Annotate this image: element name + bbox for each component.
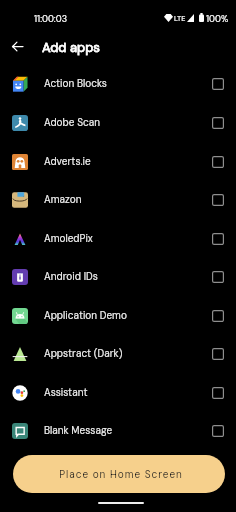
button[interactable]: Action Blocks bbox=[0, 64, 236, 103]
button[interactable]: Assistant bbox=[0, 373, 236, 412]
button[interactable]: Appstract (Dark) bbox=[0, 334, 236, 373]
staticText: LTE bbox=[174, 14, 186, 24]
staticText: Action Blocks bbox=[44, 77, 107, 90]
staticText: Blank Message bbox=[44, 424, 113, 437]
staticText: Application Demo bbox=[44, 309, 127, 322]
staticText: Appstract (Dark) bbox=[44, 347, 123, 360]
button[interactable]: Place on Home Screen bbox=[13, 455, 225, 493]
staticText: Add apps bbox=[42, 39, 100, 56]
button[interactable]: AmoledPix bbox=[0, 219, 236, 258]
staticText: Place on Home Screen bbox=[59, 468, 183, 481]
staticText: Android IDs bbox=[44, 270, 98, 283]
staticText: Assistant bbox=[44, 386, 88, 399]
button[interactable]: Adverts.ie bbox=[0, 142, 236, 181]
staticText: Add apps bbox=[42, 39, 100, 56]
staticText: 11:00:03 bbox=[34, 13, 68, 25]
button[interactable]: Blank Message bbox=[0, 411, 236, 450]
staticText: Amazon bbox=[44, 193, 82, 206]
button[interactable]: Amazon bbox=[0, 180, 236, 219]
button[interactable]: Adobe Scan bbox=[0, 103, 236, 142]
button[interactable]: Application Demo bbox=[0, 296, 236, 335]
staticText: 100% bbox=[206, 13, 229, 25]
staticText: Adverts.ie bbox=[44, 155, 91, 168]
staticText: AmoledPix bbox=[44, 232, 93, 245]
button[interactable]: Back bbox=[3, 32, 31, 60]
staticText: Adobe Scan bbox=[44, 116, 101, 129]
button[interactable]: Android IDs bbox=[0, 257, 236, 296]
